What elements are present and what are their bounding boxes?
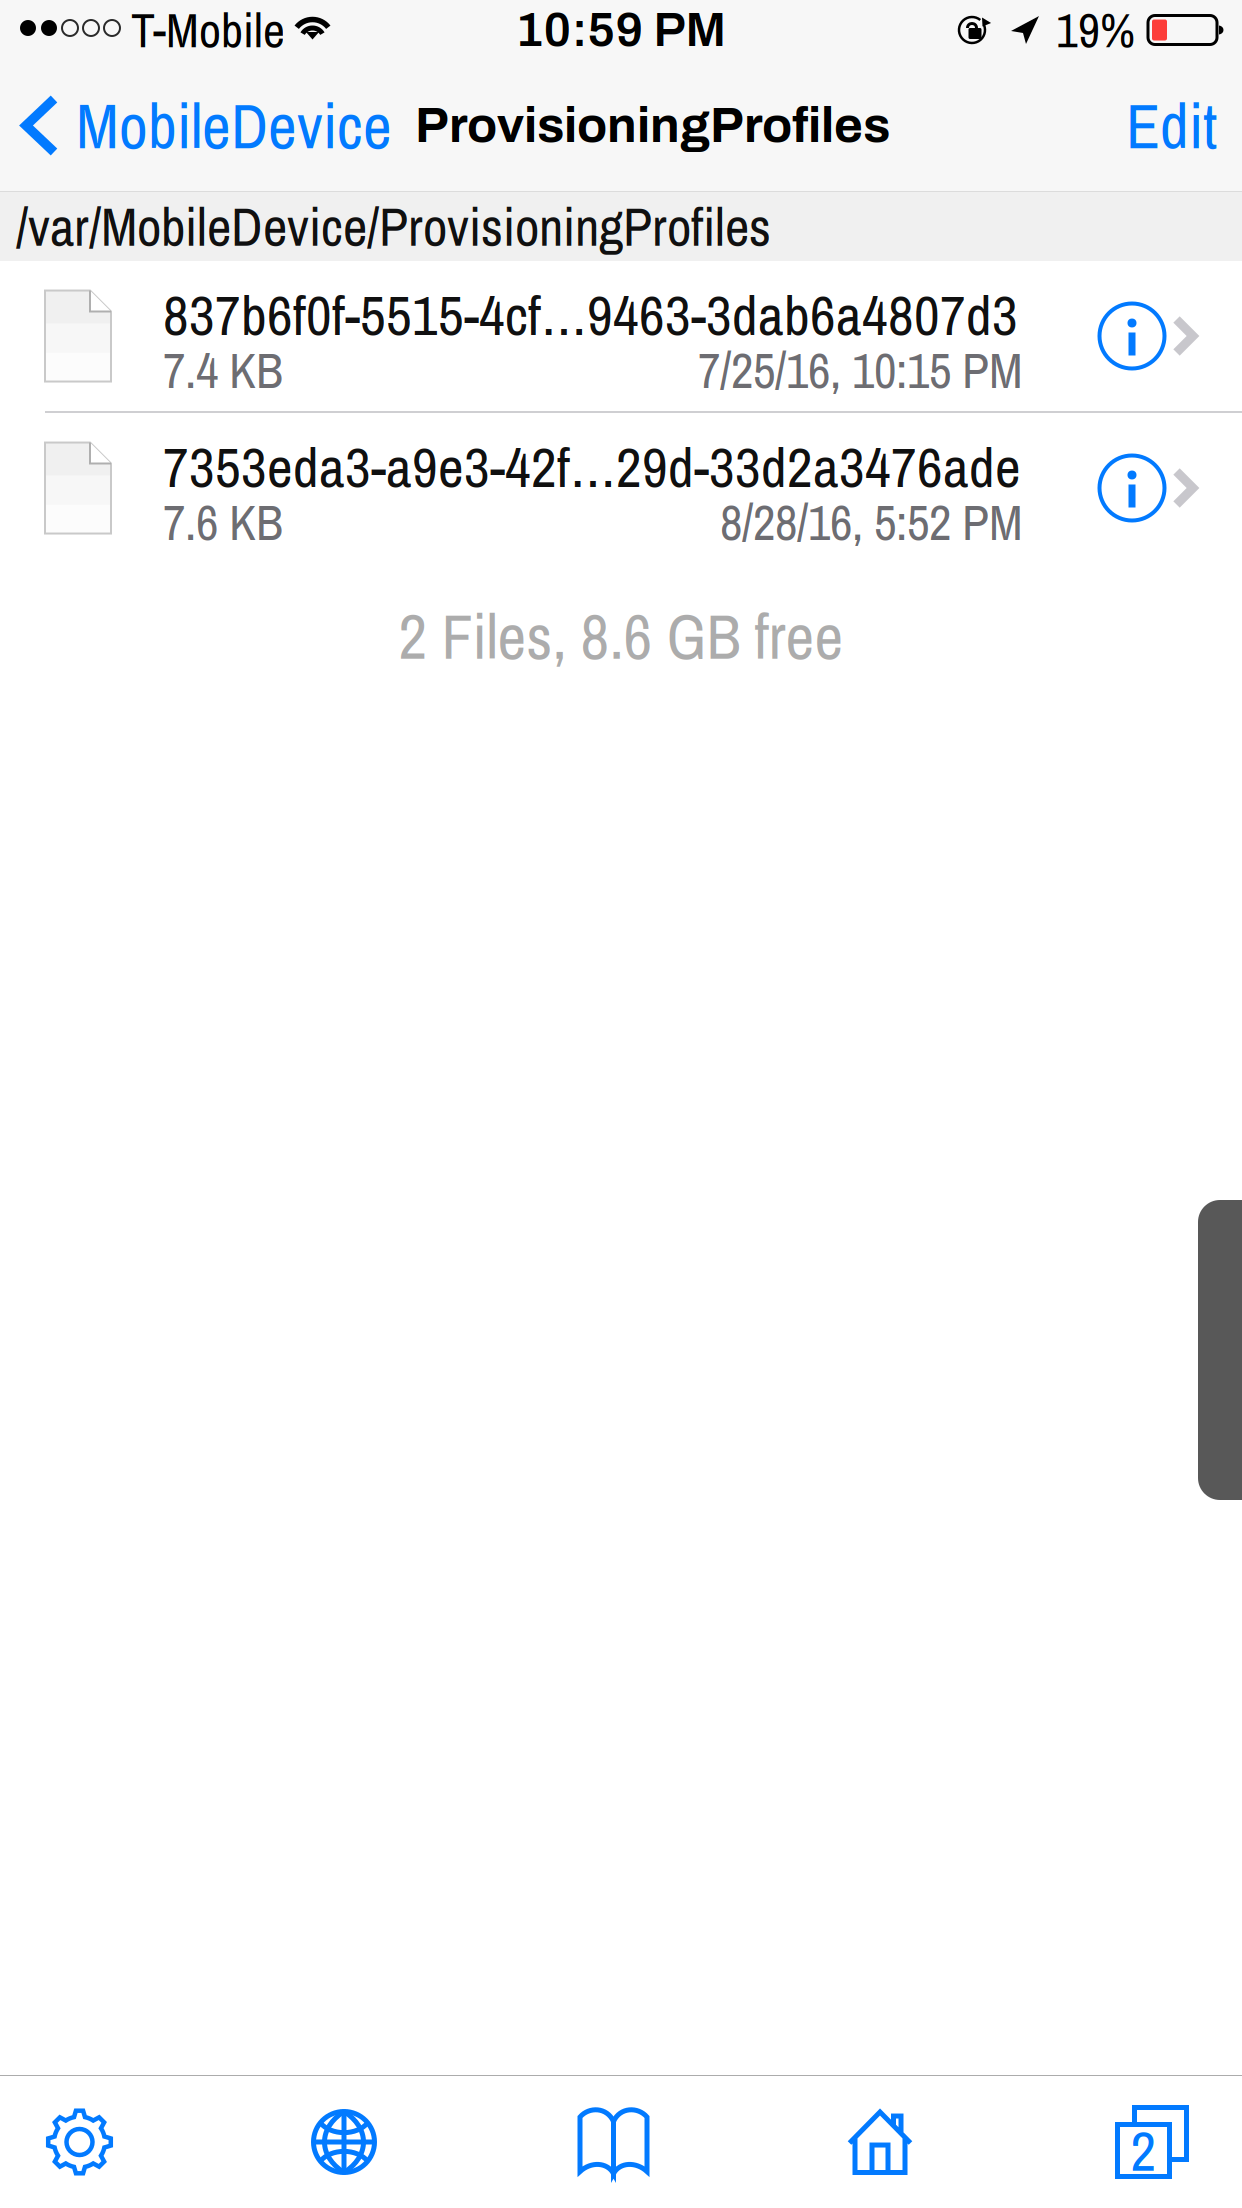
staticText: 7.6 KB: [163, 489, 283, 555]
button[interactable]: 837b6f0f-5515-4cf…9463-3dab6a4807d3: [0, 261, 1242, 411]
staticText: 19%: [1056, 0, 1135, 62]
staticText: T-Mobile: [131, 0, 285, 62]
staticText: /var/MobileDevice/ProvisioningProfiles: [16, 191, 771, 262]
button[interactable]: Open pages, 2: [1061, 2076, 1242, 2208]
button[interactable]: Web browser: [160, 2076, 528, 2208]
button[interactable]: More info: [1082, 261, 1182, 411]
staticText: 837b6f0f-5515-4cf…9463-3dab6a4807d3: [163, 277, 1018, 352]
button[interactable]: More info: [1082, 413, 1182, 563]
staticText: 7/25/16, 10:15 PM: [698, 337, 1023, 403]
button[interactable]: MobileDevice: [0, 60, 392, 191]
staticText: ProvisioningProfiles: [415, 99, 890, 152]
staticText: 8/28/16, 5:52 PM: [720, 489, 1023, 555]
staticText: 7353eda3-a9e3-42f…29d-33d2a3476ade: [163, 429, 1021, 504]
staticText: MobileDevice: [76, 83, 392, 168]
staticText: 10:59 PM: [515, 4, 726, 56]
staticText: 7.4 KB: [163, 337, 283, 403]
button[interactable]: Home: [699, 2076, 1061, 2208]
button[interactable]: Edit: [1086, 60, 1242, 191]
staticText: Edit: [1126, 83, 1217, 168]
button[interactable]: Bookmarks: [528, 2076, 699, 2208]
button[interactable]: Settings: [0, 2076, 160, 2208]
staticText: 2: [1130, 2113, 1156, 2188]
button[interactable]: 7353eda3-a9e3-42f…29d-33d2a3476ade: [0, 413, 1242, 563]
staticText: 2 Files, 8.6 GB free: [398, 594, 843, 678]
